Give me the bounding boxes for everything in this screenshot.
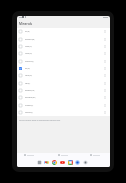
button[interactable]: Phosphorus (P) — [17, 58, 110, 65]
staticText: Potassium (K) — [25, 112, 33, 114]
button[interactable]: Iodine (I) — [17, 80, 110, 87]
staticText: Copper (Cu) — [25, 46, 32, 48]
button[interactable]: Shelf item 3 — [90, 154, 102, 157]
button[interactable]: Sodium (Na) — [17, 72, 110, 79]
button[interactable]: Play Store — [75, 160, 80, 165]
staticText: Tap any mineral above to view detailed n… — [19, 119, 61, 121]
button[interactable]: Shelf item 2 — [58, 154, 70, 157]
staticText: Chromium (Cr) — [25, 105, 34, 107]
staticText: Sodium (Na) — [25, 75, 32, 77]
staticText: Phosphorus (P) — [25, 61, 34, 63]
staticText: Zinc (Zn) — [25, 68, 30, 70]
staticText: Minerals — [19, 22, 33, 26]
button[interactable]: Chromium (Cr) — [17, 102, 110, 109]
button[interactable]: Chrome — [52, 160, 57, 165]
button[interactable]: Molybdenum (Mo) — [17, 94, 110, 101]
button[interactable]: Potassium (K) — [17, 109, 110, 116]
staticText: Iodine (I) — [25, 83, 30, 85]
button[interactable]: Manganese (Mn) — [17, 87, 110, 94]
button[interactable]: Photos — [68, 160, 73, 165]
staticText: Molybdenum (Mo) — [25, 97, 36, 99]
staticText: Calcium (Ca) — [25, 53, 32, 55]
button[interactable]: Calcium (Ca) — [17, 50, 110, 57]
button[interactable]: Shelf item 1 — [24, 154, 36, 157]
staticText: Magnesium (Mg) — [25, 39, 35, 41]
staticText: Manganese (Mn) — [25, 90, 35, 92]
button[interactable]: YouTube — [60, 160, 65, 165]
staticText: Iron (Fe) — [25, 31, 30, 33]
button[interactable]: Copper (Cu) — [17, 43, 110, 50]
button[interactable]: Camera — [83, 160, 88, 165]
button[interactable]: Magnesium (Mg) — [17, 36, 110, 43]
button[interactable]: Gmail — [44, 160, 49, 165]
button[interactable]: Apps — [37, 160, 42, 165]
button[interactable]: Zinc (Zn) — [17, 65, 110, 72]
button[interactable]: Iron (Fe) — [17, 28, 110, 35]
